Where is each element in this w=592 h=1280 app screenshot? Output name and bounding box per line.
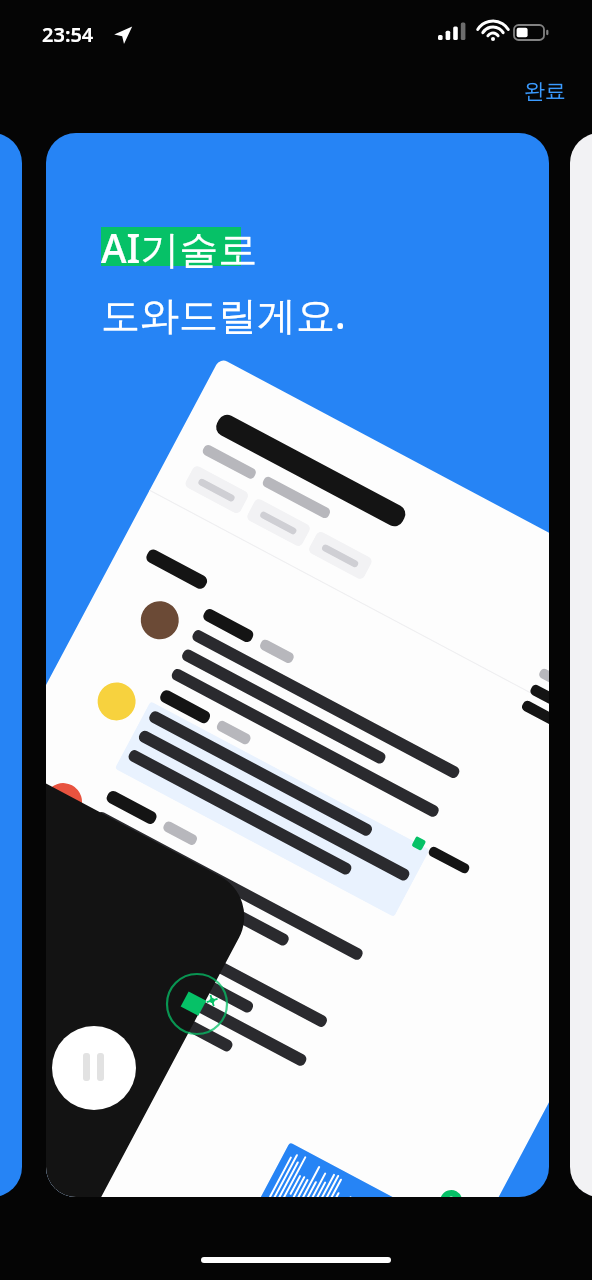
button[interactable]: 완료 xyxy=(510,70,580,112)
staticText: 완료 xyxy=(524,78,566,104)
staticText: AI기술로 xyxy=(101,221,258,274)
staticText: 도와드릴게요. xyxy=(101,287,346,340)
staticText: 23:54 xyxy=(42,21,94,48)
button[interactable] xyxy=(101,222,241,270)
